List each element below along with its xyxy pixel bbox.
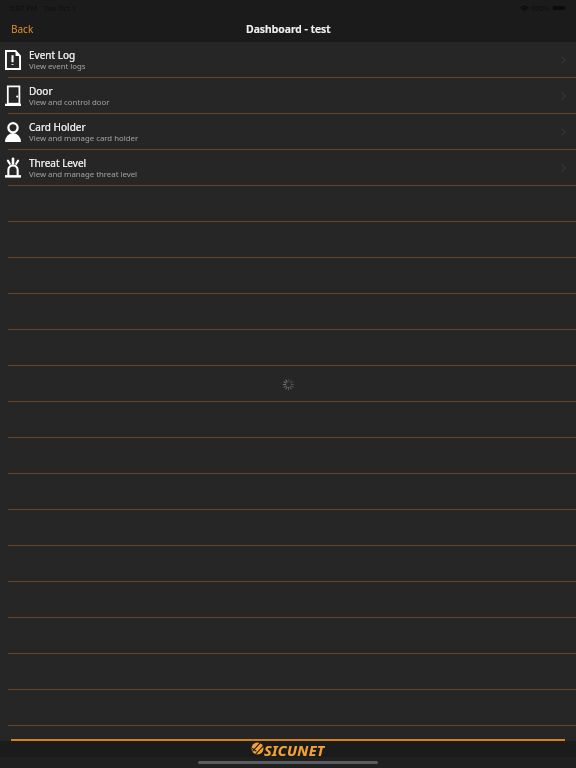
staticText: View event logs	[29, 61, 86, 72]
button[interactable]: Door	[0, 78, 576, 114]
staticText: 6:07 PM	[10, 3, 38, 13]
staticText: Dashboard - test	[246, 22, 331, 36]
staticText: View and manage threat level	[29, 169, 138, 180]
button[interactable]: Threat Level	[0, 150, 576, 186]
staticText: Threat Level	[29, 156, 87, 170]
staticText: Event Log	[29, 48, 76, 62]
button[interactable]: Event Log	[0, 42, 576, 78]
staticText: SICUNET	[264, 740, 325, 756]
staticText: Card Holder	[29, 120, 86, 134]
button[interactable]: Card Holder	[0, 114, 576, 150]
staticText: View and control door	[29, 97, 110, 108]
staticText: Back	[11, 22, 34, 36]
staticText: 100%	[531, 3, 550, 13]
button[interactable]: Back	[0, 17, 44, 41]
staticText: Tue Oct 1	[44, 3, 77, 13]
staticText: View and manage card holder	[29, 133, 139, 144]
staticText: Door	[29, 84, 53, 98]
